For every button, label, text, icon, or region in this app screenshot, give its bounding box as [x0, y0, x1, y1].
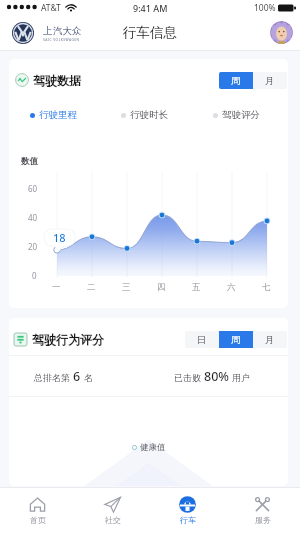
staticText: 驾驶行为评分 — [32, 332, 104, 347]
staticText: 数值 — [21, 156, 38, 167]
button[interactable]: 周 — [219, 72, 253, 89]
staticText: 已击败 — [174, 372, 201, 383]
button[interactable]: 周 — [219, 331, 253, 348]
staticText: 6 — [73, 368, 81, 385]
staticText: 六 — [227, 282, 236, 293]
staticText: 月 — [265, 75, 275, 87]
staticText: 80% — [204, 368, 229, 385]
staticText: 社交 — [105, 515, 121, 525]
staticText: 日 — [197, 334, 207, 346]
staticText: 名 — [84, 372, 93, 383]
button[interactable]: 首页 — [0, 487, 75, 533]
button[interactable]: 社交 — [75, 487, 150, 533]
staticText: 行车 — [180, 515, 196, 525]
staticText: 周 — [231, 75, 241, 87]
staticText: 二 — [87, 282, 96, 293]
button[interactable]: Profile — [270, 21, 293, 44]
staticText: SAIC VOLKSWAGEN — [43, 37, 80, 41]
staticText: 行驶时长 — [130, 109, 168, 121]
button[interactable]: 行驶时长 — [121, 107, 168, 123]
staticText: 0 — [32, 270, 37, 281]
staticText: 一 — [52, 282, 61, 293]
staticText: 用户 — [232, 372, 250, 383]
staticText: 20 — [28, 241, 38, 252]
staticText: 上汽大众 — [43, 25, 82, 37]
staticText: 行车信息 — [123, 24, 177, 41]
staticText: 月 — [265, 334, 275, 346]
staticText: 服务 — [255, 515, 271, 525]
button[interactable]: 行驶里程 — [30, 107, 77, 123]
staticText: 总排名第 — [34, 372, 70, 383]
staticText: 驾驶数据 — [33, 73, 81, 88]
staticText: 60 — [28, 183, 38, 194]
staticText: 驾驶评分 — [222, 109, 260, 121]
staticText: 首页 — [30, 515, 46, 525]
staticText: 五 — [192, 282, 201, 293]
staticText: 健康值 — [140, 442, 166, 453]
staticText: 18 — [53, 230, 66, 245]
button[interactable]: 驾驶评分 — [213, 107, 260, 123]
staticText: 40 — [28, 212, 38, 223]
staticText: 四 — [157, 282, 166, 293]
button[interactable]: 月 — [253, 331, 287, 348]
button[interactable]: 月 — [253, 72, 287, 89]
staticText: 100% — [254, 2, 276, 14]
button[interactable]: 行车 — [150, 487, 225, 533]
staticText: 9:41 AM — [133, 2, 168, 14]
staticText: 三 — [122, 282, 131, 293]
staticText: 行驶里程 — [39, 109, 77, 121]
button[interactable]: 服务 — [225, 487, 300, 533]
staticText: 周 — [231, 334, 241, 346]
staticText: AT&T — [41, 2, 61, 14]
button[interactable]: 日 — [185, 331, 219, 348]
staticText: 七 — [262, 282, 271, 293]
